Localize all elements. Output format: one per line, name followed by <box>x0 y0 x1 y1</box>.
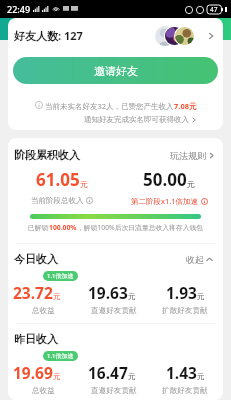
staticText: 收起 <box>186 254 204 265</box>
staticText: 阶段累积收入 <box>14 148 80 162</box>
staticText: 元 <box>197 372 205 381</box>
staticText: 今日收入 <box>14 252 58 266</box>
staticText: 1.1倍加速 <box>47 272 74 280</box>
staticText: 扩散好友贡献 <box>162 386 208 396</box>
staticText: 元 <box>187 179 195 189</box>
button[interactable]: 通知好友完成实名即可获得收入 <box>84 115 197 124</box>
staticText: 22:49 <box>7 3 31 15</box>
staticText: 扩散好友贡献 <box>162 306 208 316</box>
staticText: 第二阶段x1.1倍加速 <box>131 196 199 206</box>
staticText: 玩法规则 <box>170 150 206 161</box>
staticText: 1.93 <box>166 282 197 303</box>
staticText: 47 <box>210 5 218 14</box>
staticText: 19.63 <box>88 282 128 303</box>
staticText: 1.43 <box>166 362 197 383</box>
staticText: 好友人数: 127 <box>14 28 83 43</box>
staticText: 19.69 <box>13 362 53 383</box>
staticText: 已解锁 <box>28 223 49 232</box>
staticText: 100.00% <box>49 223 77 232</box>
staticText: 直邀好友贡献 <box>91 386 137 396</box>
staticText: 61.05 <box>36 168 80 191</box>
button[interactable]: 好友人数: 127 <box>8 18 223 53</box>
button[interactable]: 玩法规则 <box>170 150 215 161</box>
staticText: 元 <box>80 179 88 189</box>
button[interactable]: 邀请好友 <box>13 57 218 84</box>
staticText: 邀请好友 <box>94 64 138 78</box>
staticText: 元 <box>53 292 61 301</box>
staticText: 50.00 <box>143 168 187 191</box>
button[interactable]: 收起 <box>186 254 213 265</box>
staticText: 元 <box>53 372 61 381</box>
staticText: 当前阶段总收入 <box>31 196 84 205</box>
staticText: 7.08元 <box>174 101 197 111</box>
staticText: 昨日收入 <box>14 332 58 346</box>
staticText: 16.47 <box>88 362 128 383</box>
staticText: 1.1倍加速 <box>47 352 74 360</box>
staticText: 总收益 <box>32 386 55 396</box>
staticText: 元 <box>128 372 136 381</box>
staticText: 元 <box>128 292 136 301</box>
staticText: 通知好友完成实名即可获得收入 <box>84 115 189 124</box>
staticText: 直邀好友贡献 <box>91 306 137 316</box>
staticText: 元 <box>197 292 205 301</box>
staticText: ，解锁100%后次日流量总收入将存入钱包 <box>77 223 204 232</box>
staticText: 23.72 <box>13 282 53 303</box>
staticText: 总收益 <box>32 306 55 316</box>
staticText: 当前未实名好友32人，已赞您产生收入 <box>45 101 174 111</box>
